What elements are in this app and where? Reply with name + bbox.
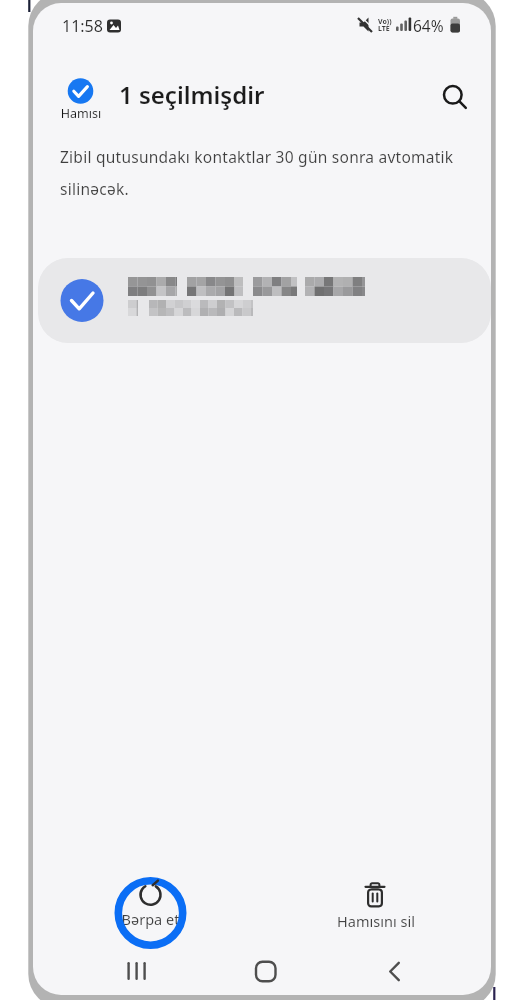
staticText: silinəcək. [60,178,129,199]
button[interactable] [110,874,191,952]
button[interactable] [112,950,160,992]
staticText: 11:58 [62,15,103,37]
staticText: 1 seçilmişdir [119,78,265,111]
staticText: Hamısını sil [331,911,421,931]
staticText: Bərpa et [105,909,196,929]
staticText: LTE [378,24,390,34]
staticText: Zibil qutusundakı kontaktlar 30 gün sonr… [60,146,454,167]
button[interactable] [56,72,106,126]
button[interactable] [338,874,414,934]
staticText: Hamısı [56,105,106,122]
staticText: Vo)) [378,17,392,27]
staticText: 64% [413,15,444,36]
button[interactable] [242,950,290,992]
button[interactable] [38,258,491,343]
button[interactable] [370,950,418,992]
button[interactable] [436,78,472,114]
